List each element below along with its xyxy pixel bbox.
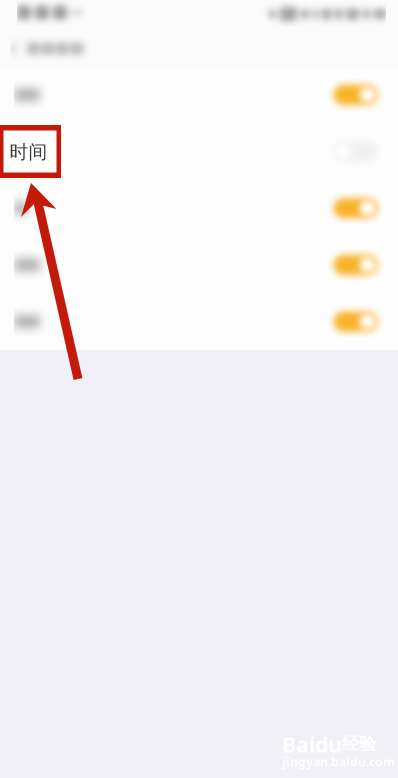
button[interactable] [0, 67, 398, 123]
button[interactable] [0, 180, 398, 236]
button[interactable] [0, 124, 398, 179]
button[interactable]: Back [0, 28, 120, 67]
staticText: jingyan.baidu.com [282, 754, 395, 770]
staticText: Baidu [282, 730, 342, 758]
staticText: 经验 [342, 733, 376, 754]
staticText: 时间 [9, 140, 47, 163]
button[interactable] [0, 294, 398, 349]
button[interactable] [0, 237, 398, 293]
